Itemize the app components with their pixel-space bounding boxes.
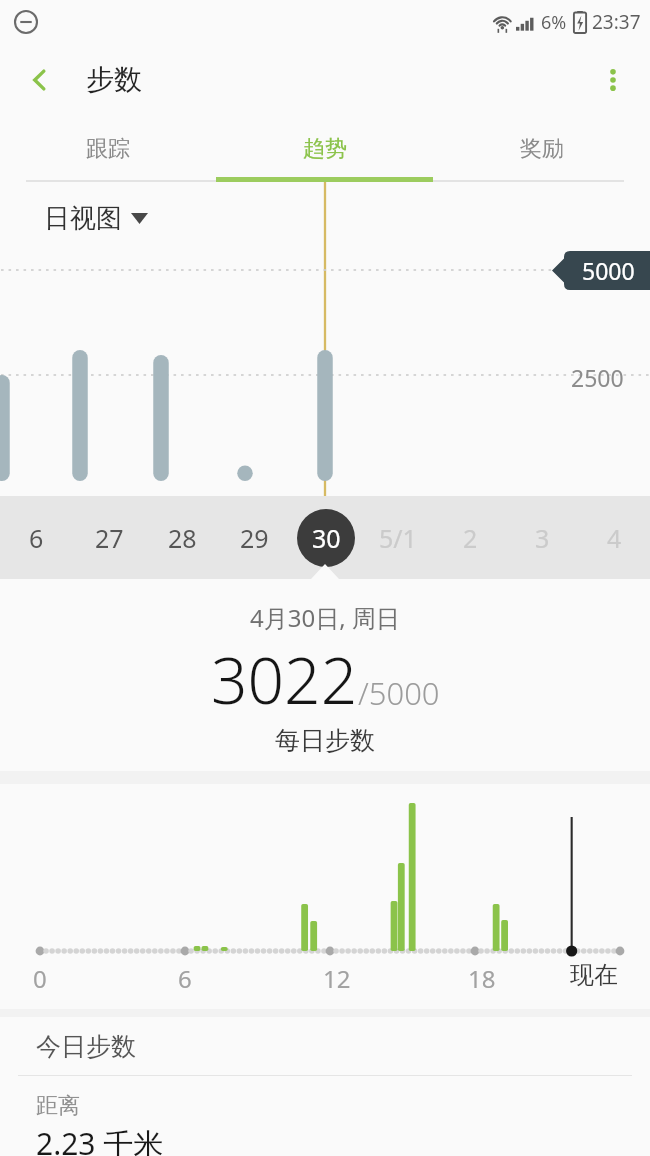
staticText: 29 — [240, 521, 269, 555]
button[interactable]: 27 — [73, 496, 146, 579]
button[interactable]: Back — [16, 56, 64, 104]
staticText: 0 — [33, 962, 47, 995]
staticText: 12 — [323, 962, 351, 995]
staticText: 日视图 — [44, 202, 122, 235]
staticText: 2 — [463, 521, 478, 555]
staticText: 现在 — [570, 960, 618, 990]
staticText: 5000 — [582, 255, 635, 286]
staticText: 3022 — [211, 636, 358, 723]
staticText: 每日步数 — [275, 725, 375, 756]
button[interactable]: 今日步数 — [0, 1017, 650, 1075]
staticText: 6 — [178, 962, 192, 995]
button[interactable]: 30 — [290, 496, 362, 579]
button[interactable]: 6 — [0, 496, 73, 579]
button[interactable]: 日视图 — [44, 202, 148, 235]
button[interactable]: More options — [588, 55, 638, 105]
button[interactable]: 趋势 — [216, 115, 433, 182]
staticText: 6% — [541, 10, 567, 35]
staticText: 5/1 — [379, 521, 417, 555]
staticText: 4 — [607, 521, 622, 555]
staticText: /5000 — [358, 672, 440, 714]
staticText: 18 — [468, 962, 496, 995]
button[interactable]: 28 — [146, 496, 218, 579]
staticText: 23:37 — [592, 9, 641, 35]
staticText: 距离 — [36, 1092, 80, 1120]
button[interactable]: 29 — [218, 496, 290, 579]
button[interactable]: 跟踪 — [0, 115, 216, 182]
staticText: 3 — [535, 521, 550, 555]
staticText: 今日步数 — [36, 1031, 136, 1062]
staticText: 跟踪 — [86, 135, 130, 163]
button[interactable]: 奖励 — [433, 115, 650, 182]
staticText: 28 — [168, 521, 197, 555]
staticText: 2.23 千米 — [36, 1123, 164, 1156]
staticText: 27 — [95, 521, 124, 555]
button[interactable]: 3 — [506, 496, 578, 579]
staticText: 2500 — [571, 362, 624, 393]
button[interactable]: 4 — [578, 496, 650, 579]
staticText: 步数 — [86, 62, 142, 97]
staticText: 奖励 — [520, 135, 564, 163]
staticText: 30 — [312, 521, 341, 555]
staticText: 6 — [29, 521, 44, 555]
staticText: 4月30日, 周日 — [250, 601, 400, 634]
staticText: 趋势 — [303, 135, 347, 163]
button[interactable]: 5/1 — [362, 496, 434, 579]
